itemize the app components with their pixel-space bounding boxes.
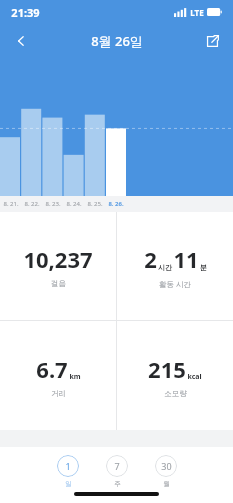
button[interactable]: 10,237 [0, 212, 116, 320]
staticText: 21:39 [11, 5, 40, 20]
staticText: 215 [148, 354, 186, 384]
staticText: 시간 [158, 263, 172, 272]
button[interactable]: 2 [117, 212, 233, 320]
staticText: 11 [173, 244, 199, 274]
staticText: 30 [161, 460, 172, 472]
staticText: 2 [144, 244, 157, 274]
staticText: 주 [114, 480, 121, 488]
staticText: 8. 25. [87, 200, 103, 208]
staticText: 8월 26일 [91, 32, 143, 50]
staticText: 6.7 [36, 354, 68, 384]
staticText: 10,237 [23, 244, 93, 274]
staticText: 월 [163, 480, 170, 488]
staticText: 1 [65, 460, 71, 472]
staticText: 8. 21. [3, 200, 19, 208]
button[interactable]: Share [197, 26, 227, 56]
staticText: LTE [190, 7, 204, 18]
staticText: km [69, 372, 81, 382]
staticText: 8. 24. [66, 200, 82, 208]
button[interactable]: 215 [117, 321, 233, 430]
staticText: 8. 23. [45, 200, 61, 208]
staticText: 걸음 [51, 279, 66, 288]
staticText: kcal [187, 372, 202, 382]
staticText: 소모량 [164, 389, 187, 398]
button[interactable]: 1 [57, 455, 79, 488]
button[interactable]: Back [6, 26, 36, 56]
staticText: 7 [114, 460, 120, 472]
staticText: 8. 26. [108, 200, 124, 208]
button[interactable]: 6.7 [0, 321, 116, 430]
staticText: 활동 시간 [159, 279, 191, 289]
button[interactable]: 7 [106, 455, 128, 488]
staticText: 거리 [51, 389, 66, 398]
staticText: 8. 22. [24, 200, 40, 208]
button[interactable]: 30 [155, 455, 177, 488]
staticText: 일 [65, 480, 72, 488]
staticText: 분 [200, 263, 207, 272]
